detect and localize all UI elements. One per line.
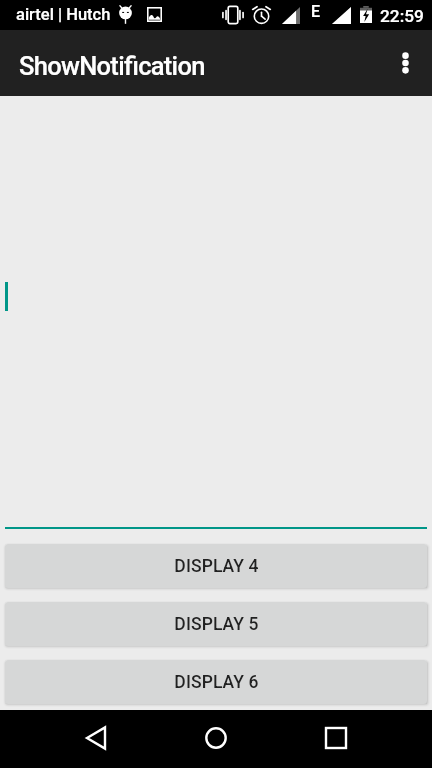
button[interactable]: DISPLAY 6 (5, 660, 427, 704)
button[interactable]: Recent apps (308, 710, 364, 766)
button[interactable]: More options (381, 39, 429, 87)
staticText: DISPLAY 4 (174, 556, 259, 577)
button[interactable]: Back (68, 710, 124, 766)
button[interactable]: DISPLAY 4 (5, 544, 427, 588)
staticText: E (311, 2, 321, 21)
staticText: ShowNotification (19, 51, 205, 81)
button[interactable]: DISPLAY 5 (5, 602, 427, 646)
staticText: DISPLAY 5 (174, 614, 259, 635)
staticText: airtel | Hutch (16, 5, 111, 24)
staticText: 22:59 (380, 6, 424, 26)
button[interactable]: Home (188, 710, 244, 766)
staticText: DISPLAY 6 (174, 672, 259, 693)
